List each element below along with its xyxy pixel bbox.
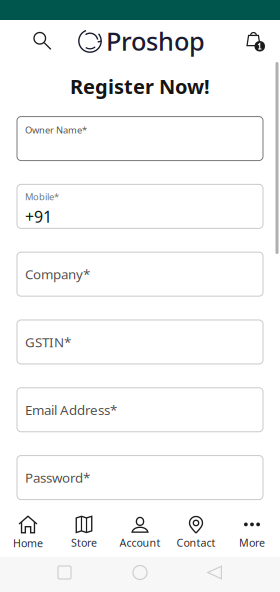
staticText: Confirm Password* bbox=[25, 536, 143, 554]
staticText: GSTIN* bbox=[25, 333, 71, 351]
staticText: Home bbox=[13, 536, 43, 550]
staticText: Email Address* bbox=[25, 401, 117, 419]
staticText: Register Now! bbox=[70, 73, 210, 100]
staticText: Account bbox=[119, 535, 160, 550]
button[interactable]: Back bbox=[160, 559, 235, 589]
button[interactable]: Password* bbox=[17, 456, 263, 500]
button[interactable]: Recents bbox=[0, 560, 84, 589]
button[interactable]: Company* bbox=[17, 252, 263, 296]
staticText: More bbox=[239, 535, 265, 550]
staticText: Password* bbox=[25, 469, 90, 486]
button[interactable]: Mobile* bbox=[17, 184, 263, 228]
staticText: Mobile* bbox=[25, 190, 59, 203]
button[interactable]: More bbox=[224, 511, 280, 559]
button[interactable]: Contact bbox=[168, 511, 224, 559]
staticText: Proshop bbox=[106, 24, 205, 58]
button[interactable]: Search bbox=[0, 22, 65, 59]
button[interactable]: Cart, 1 item bbox=[231, 22, 280, 60]
staticText: Store bbox=[71, 535, 97, 550]
button[interactable]: Home bbox=[84, 559, 160, 589]
button[interactable]: Owner Name* bbox=[17, 117, 263, 161]
staticText: Owner Name* bbox=[25, 124, 87, 136]
button[interactable]: Email Address* bbox=[17, 388, 263, 432]
staticText: +91 bbox=[25, 206, 52, 227]
button[interactable]: GSTIN* bbox=[17, 320, 263, 364]
button[interactable]: Home bbox=[0, 511, 56, 559]
button[interactable]: Account bbox=[112, 511, 168, 559]
staticText: Company* bbox=[25, 265, 90, 283]
staticText: Contact bbox=[176, 535, 215, 550]
button[interactable]: Store bbox=[56, 511, 112, 559]
button[interactable]: Confirm Password* bbox=[17, 523, 263, 567]
